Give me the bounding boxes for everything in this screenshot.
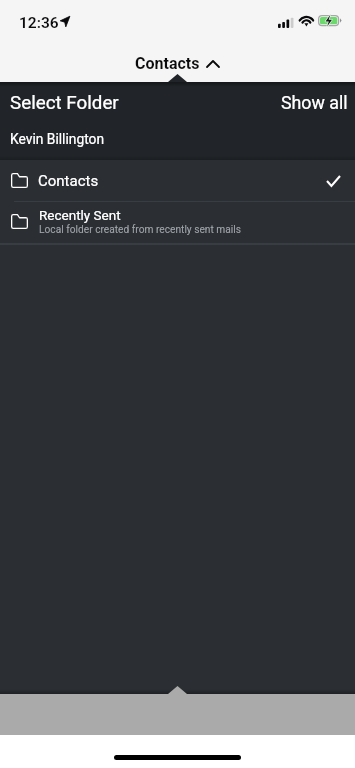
other: Selected bbox=[327, 176, 340, 186]
other: Cellular signal bbox=[278, 17, 294, 29]
staticText: Contacts bbox=[135, 54, 200, 73]
staticText: Contacts bbox=[38, 172, 99, 190]
button[interactable]: Show all bbox=[275, 89, 354, 116]
staticText: Local folder created from recently sent … bbox=[39, 224, 242, 236]
staticText: Kevin Billington bbox=[10, 131, 105, 147]
other: Battery charging bbox=[318, 15, 342, 27]
staticText: 12:36 bbox=[19, 14, 59, 32]
button[interactable]: Contacts bbox=[0, 160, 355, 201]
button[interactable]: Contacts bbox=[130, 51, 224, 76]
staticText: Select Folder bbox=[10, 92, 119, 114]
staticText: Recently Sent bbox=[39, 207, 121, 223]
button[interactable]: Select Folder bbox=[4, 89, 125, 117]
button[interactable]: Recently Sent bbox=[0, 202, 355, 243]
other: Location bbox=[60, 16, 70, 27]
other: Wi-Fi bbox=[298, 14, 315, 28]
staticText: Show all bbox=[281, 92, 348, 113]
